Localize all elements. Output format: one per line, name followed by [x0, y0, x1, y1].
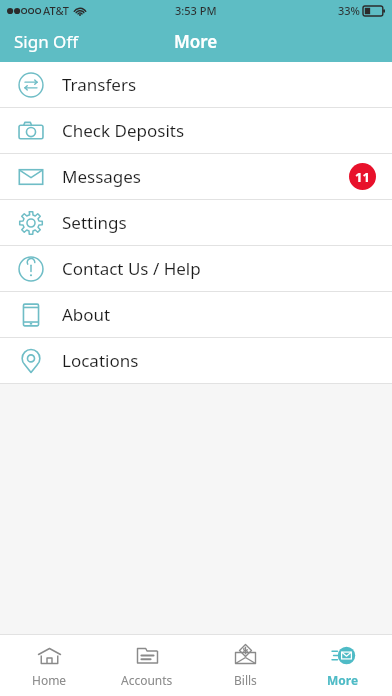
button[interactable]: Sign Off	[0, 24, 93, 59]
staticText: Bills	[234, 672, 257, 688]
staticText: AT&T	[43, 3, 70, 18]
button[interactable]: Messages	[0, 154, 392, 199]
staticText: 33%	[338, 3, 360, 18]
button[interactable]: Check Deposits	[0, 108, 392, 153]
staticText: Sign Off	[14, 30, 79, 53]
staticText: Locations	[62, 349, 392, 372]
button[interactable]: Bills	[196, 635, 294, 696]
button[interactable]: Contact Us / Help	[0, 246, 392, 291]
button[interactable]: More	[294, 635, 392, 696]
staticText: Home	[32, 672, 67, 688]
staticText: Check Deposits	[62, 119, 392, 142]
button[interactable]: Locations	[0, 338, 392, 383]
staticText: About	[62, 303, 392, 326]
button[interactable]: Accounts	[98, 635, 196, 696]
button[interactable]: Home	[0, 635, 98, 696]
staticText: Settings	[62, 211, 392, 234]
button[interactable]: Settings	[0, 200, 392, 245]
button[interactable]: Transfers	[0, 62, 392, 107]
staticText: Transfers	[62, 73, 392, 96]
staticText: 11	[355, 168, 370, 186]
staticText: Accounts	[121, 672, 173, 688]
button[interactable]: About	[0, 292, 392, 337]
staticText: Contact Us / Help	[62, 257, 392, 280]
staticText: More	[174, 30, 218, 53]
staticText: 3:53 PM	[175, 3, 217, 18]
staticText: More	[327, 672, 359, 688]
staticText: Messages	[62, 165, 349, 188]
